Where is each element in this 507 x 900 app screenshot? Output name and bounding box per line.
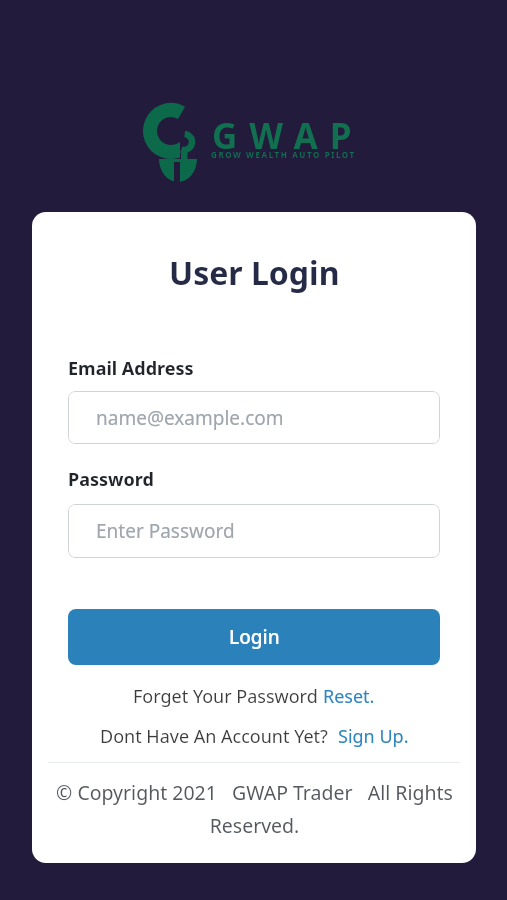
button[interactable]: Login bbox=[68, 609, 440, 665]
button[interactable]: Forget Your Password bbox=[133, 684, 375, 709]
staticText: Forget Your Password bbox=[133, 684, 323, 709]
staticText: name@example.com bbox=[96, 405, 284, 431]
staticText: GROW WEALTH AUTO PILOT bbox=[211, 149, 356, 160]
staticText: © Copyright 2021 GWAP Trader All Rights … bbox=[56, 779, 453, 839]
staticText: Email Address bbox=[68, 356, 440, 381]
button[interactable]: Dont Have An Account Yet? bbox=[100, 724, 409, 749]
staticText: Enter Password bbox=[96, 518, 235, 544]
staticText: Login bbox=[229, 624, 280, 650]
staticText: User Login bbox=[169, 251, 340, 295]
button[interactable]: name@example.com bbox=[68, 391, 440, 444]
staticText: Dont Have An Account Yet? bbox=[100, 724, 338, 749]
staticText: Sign Up. bbox=[338, 724, 409, 749]
button[interactable]: Enter Password bbox=[68, 504, 440, 558]
staticText: GWAP bbox=[212, 112, 364, 160]
staticText: Password bbox=[68, 467, 440, 492]
staticText: Reset. bbox=[323, 684, 375, 709]
